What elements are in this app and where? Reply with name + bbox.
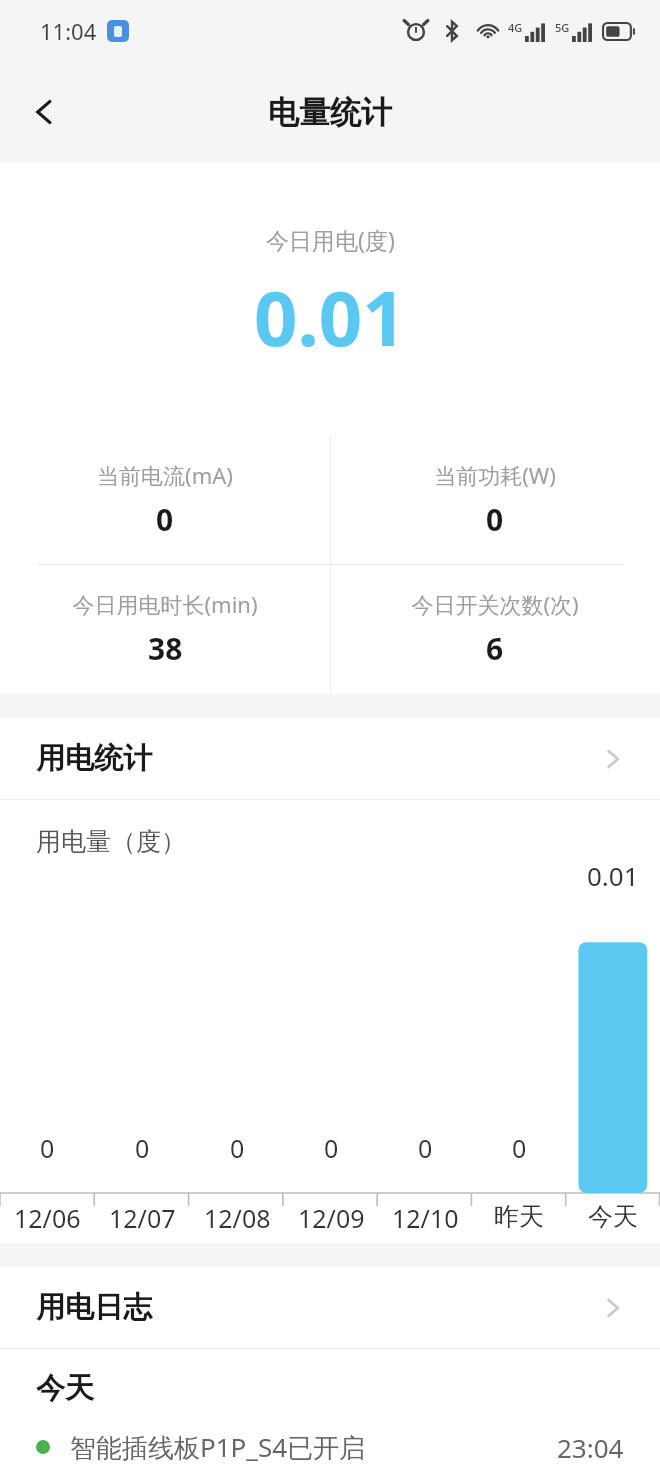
staticText: 0: [418, 1131, 433, 1165]
staticText: 12/10: [392, 1201, 459, 1235]
staticText: 用电量（度）: [36, 826, 186, 857]
staticText: 0: [40, 1131, 55, 1165]
staticText: 今日用电时长(min): [72, 589, 258, 619]
button[interactable]: 智能插线板P1P_S4已开启: [0, 1427, 660, 1467]
staticText: 用电日志: [36, 1289, 152, 1326]
staticText: 12/08: [204, 1201, 271, 1235]
staticText: 12/06: [14, 1201, 81, 1235]
button[interactable]: 今日开关次数(次): [330, 564, 660, 694]
staticText: 0.01: [254, 265, 406, 369]
staticText: 今日开关次数(次): [411, 589, 579, 619]
button[interactable]: 当前功耗(W): [330, 435, 660, 564]
staticText: 智能插线板P1P_S4已开启: [70, 1429, 366, 1465]
staticText: 用电统计: [36, 740, 152, 777]
staticText: 0: [324, 1131, 339, 1165]
staticText: 23:04: [557, 1430, 624, 1465]
staticText: 4G: [508, 20, 523, 35]
staticText: 12/09: [298, 1201, 365, 1235]
staticText: 0: [230, 1131, 245, 1165]
staticText: 6: [486, 628, 504, 669]
staticText: 今天: [36, 1370, 94, 1407]
staticText: 昨天: [494, 1201, 544, 1232]
staticText: 当前功耗(W): [434, 460, 556, 490]
staticText: 当前电流(mA): [97, 460, 233, 490]
staticText: 5G: [555, 20, 570, 35]
staticText: 38: [148, 628, 183, 669]
button[interactable]: 今日用电时长(min): [0, 564, 330, 694]
staticText: 电量统计: [268, 93, 392, 132]
staticText: 今日用电(度): [266, 224, 395, 255]
staticText: 0: [156, 499, 174, 540]
button[interactable]: 用电日志: [0, 1267, 660, 1348]
staticText: 11:04: [40, 16, 97, 46]
button[interactable]: 当前电流(mA): [0, 435, 330, 564]
staticText: 12/07: [109, 1201, 176, 1235]
button[interactable]: Back: [14, 81, 76, 143]
staticText: 0: [512, 1131, 527, 1165]
staticText: 今天: [588, 1201, 638, 1232]
staticText: 0: [135, 1131, 150, 1165]
staticText: 0.01: [587, 858, 639, 893]
button[interactable]: 用电统计: [0, 718, 660, 799]
staticText: 0: [486, 499, 504, 540]
